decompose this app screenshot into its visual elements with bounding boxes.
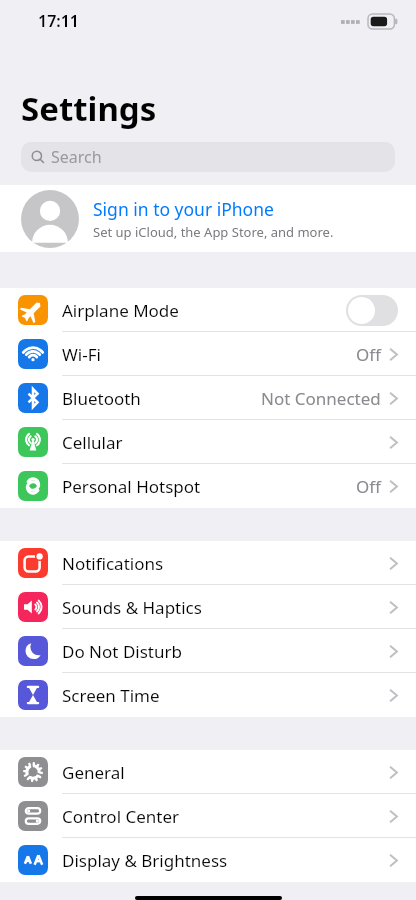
button[interactable]: Display & Brightness xyxy=(0,838,416,882)
staticText: Sign in to your iPhone xyxy=(93,197,274,221)
staticText: Personal Hotspot xyxy=(62,475,356,498)
staticText: Do Not Disturb xyxy=(62,640,389,663)
staticText: Off xyxy=(356,343,381,366)
staticText: Control Center xyxy=(62,805,389,828)
staticText: Notifications xyxy=(62,552,389,575)
button[interactable]: Airplane Mode xyxy=(0,288,416,332)
button[interactable]: Screen Time xyxy=(0,673,416,717)
button[interactable]: Cellular xyxy=(0,420,416,464)
staticText: Airplane Mode xyxy=(62,299,346,322)
button[interactable]: Personal Hotspot xyxy=(0,464,416,508)
button[interactable]: Search xyxy=(21,142,395,172)
staticText: Cellular xyxy=(62,431,389,454)
staticText: Not Connected xyxy=(261,387,381,410)
staticText: Display & Brightness xyxy=(62,849,389,872)
button[interactable]: Sounds & Haptics xyxy=(0,585,416,629)
staticText: General xyxy=(62,761,389,784)
staticText: 17:11 xyxy=(38,10,80,32)
button[interactable]: General xyxy=(0,750,416,794)
button[interactable]: Sign in to your iPhone xyxy=(0,185,416,252)
button[interactable]: Do Not Disturb xyxy=(0,629,416,673)
button[interactable]: Bluetooth xyxy=(0,376,416,420)
button[interactable]: Airplane Mode toggle xyxy=(346,295,398,326)
staticText: Settings xyxy=(21,86,157,131)
staticText: Sounds & Haptics xyxy=(62,596,389,619)
button[interactable]: Notifications xyxy=(0,541,416,585)
staticText: Screen Time xyxy=(62,684,389,707)
staticText: Bluetooth xyxy=(62,387,261,410)
staticText: Search xyxy=(51,146,102,168)
staticText: Wi-Fi xyxy=(62,343,356,366)
staticText: Off xyxy=(356,475,381,498)
button[interactable]: Control Center xyxy=(0,794,416,838)
staticText: Set up iCloud, the App Store, and more. xyxy=(93,223,334,241)
button[interactable]: Wi-Fi xyxy=(0,332,416,376)
